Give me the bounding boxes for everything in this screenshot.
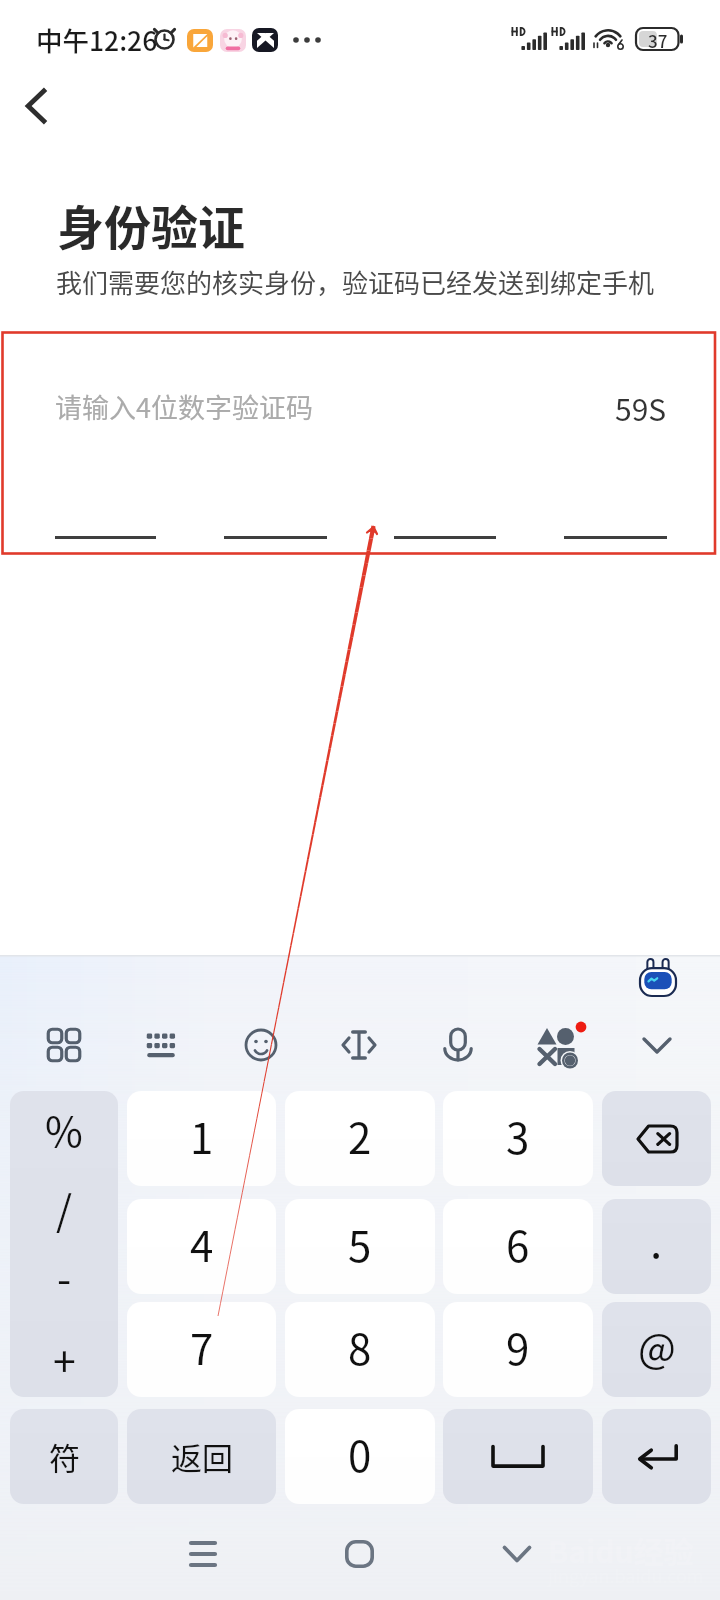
button[interactable]: 3 [443,1091,593,1186]
staticText: + [53,1329,76,1388]
button[interactable]: Home [319,1522,399,1586]
button[interactable]: Back [477,1522,557,1586]
staticText: / [56,1178,73,1237]
button[interactable]: 4 [127,1199,276,1294]
button[interactable]: Enter [602,1409,711,1504]
button[interactable] [564,504,667,539]
button[interactable]: 8 [285,1302,435,1397]
staticText: 4 [190,1213,214,1274]
staticText: 5 [348,1213,372,1274]
button[interactable]: 7 [127,1302,276,1397]
staticText: 1 [190,1105,214,1166]
staticText: 59S [615,386,667,429]
button[interactable]: Emoji [227,1011,295,1079]
button[interactable]: % [10,1091,118,1397]
staticText: @ [638,1317,676,1375]
button[interactable]: 59S [615,386,667,429]
staticText: 身份验证 [57,190,245,258]
button[interactable] [394,504,496,539]
staticText: 3 [506,1105,530,1166]
button[interactable]: @ [602,1302,711,1397]
button[interactable]: 9 [443,1302,593,1397]
staticText: 请输入4位数字验证码 [55,387,313,426]
button[interactable]: 6 [443,1199,593,1294]
button[interactable]: 返回 [127,1409,276,1504]
staticText: % [45,1099,83,1158]
button[interactable]: Apps [30,1011,98,1079]
button[interactable]: Back [7,75,69,137]
staticText: 我们需要您的核实身份，验证码已经发送到绑定手机 [56,263,655,301]
staticText: 37 [648,28,668,50]
button[interactable]: Recent apps [163,1522,243,1586]
button[interactable] [55,504,156,539]
button[interactable]: 1 [127,1091,276,1186]
button[interactable]: Backspace [602,1091,711,1186]
button[interactable]: 5 [285,1199,435,1294]
staticText: 中午12:26 [36,20,158,58]
button[interactable]: Keyboard layout [128,1011,196,1079]
staticText: 9 [506,1316,530,1377]
button[interactable] [224,504,327,539]
staticText: 0 [348,1423,372,1484]
staticText: 返回 [171,1434,233,1479]
button[interactable]: 2 [285,1091,435,1186]
button[interactable]: Move cursor [325,1011,393,1079]
button[interactable]: Hide keyboard [623,1011,691,1079]
button[interactable]: App shortcut [639,958,677,997]
staticText: 8 [348,1316,372,1377]
staticText: 2 [348,1105,372,1166]
button[interactable]: 0 [285,1409,435,1504]
staticText: - [57,1246,72,1305]
staticText: 7 [190,1316,214,1377]
button[interactable]: Space [443,1409,593,1504]
button[interactable]: Stickers [528,1011,596,1079]
button[interactable]: . [602,1199,711,1294]
staticText: 符 [49,1434,80,1479]
staticText: . [650,1207,663,1271]
button[interactable]: Voice input [424,1011,492,1079]
button[interactable]: 符 [10,1409,118,1504]
staticText: 6 [506,1213,530,1274]
